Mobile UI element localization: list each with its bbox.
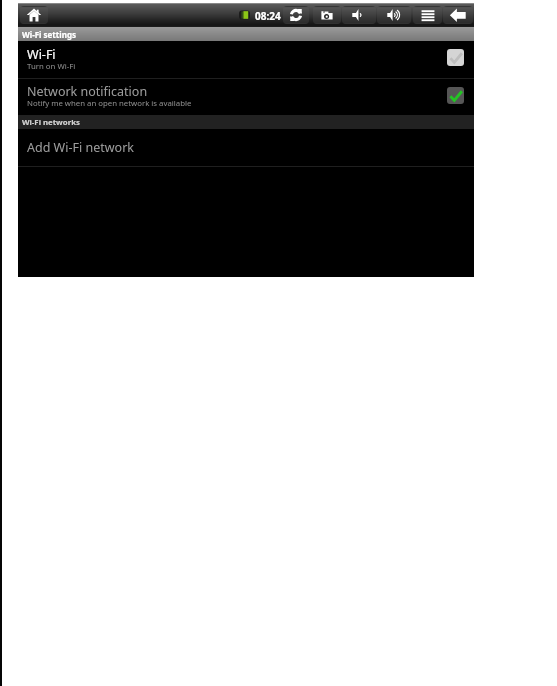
button[interactable]: Home [20, 6, 48, 24]
staticText: 08:24 [255, 9, 281, 23]
staticText: Turn on Wi-Fi [27, 61, 76, 72]
staticText: Wi-Fi settings [22, 29, 76, 40]
staticText: Wi-Fi [27, 46, 56, 63]
button[interactable]: Network notification [18, 79, 474, 115]
button[interactable]: Screenshot [313, 6, 341, 24]
staticText: Network notification [27, 83, 148, 100]
button[interactable]: Add Wi-Fi network [18, 129, 474, 166]
button[interactable]: Menu [413, 6, 442, 24]
button[interactable]: Rotate screen [283, 6, 309, 24]
staticText: Notify me when an open network is availa… [27, 98, 192, 109]
button[interactable]: Volume up [377, 6, 411, 24]
button[interactable]: Checkbox [447, 49, 464, 66]
button[interactable]: Volume down [342, 6, 376, 24]
staticText: Add Wi-Fi network [27, 139, 134, 156]
staticText: Wi-Fi networks [22, 117, 80, 128]
button[interactable]: Back [443, 6, 473, 24]
button[interactable]: Wi-Fi [18, 41, 474, 78]
button[interactable]: Checkbox [447, 87, 464, 104]
